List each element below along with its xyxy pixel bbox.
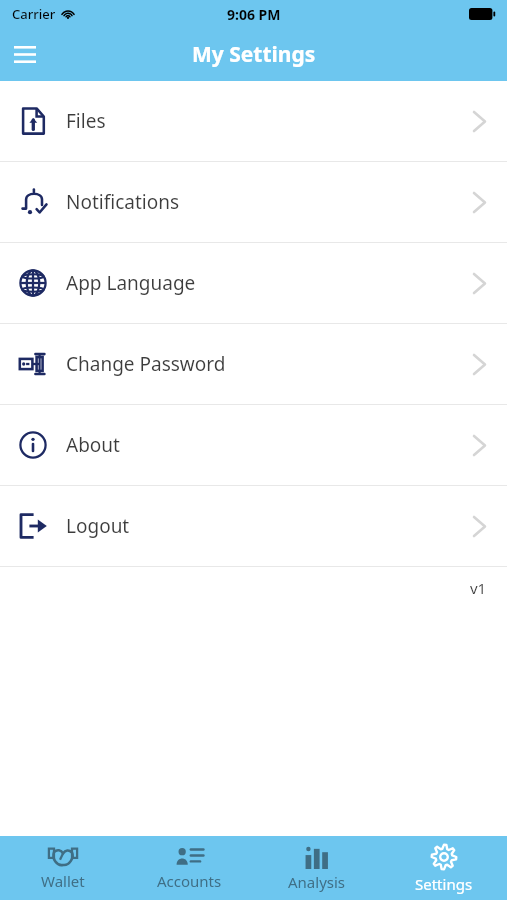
staticText: Files: [66, 108, 106, 134]
staticText: App Language: [66, 270, 196, 296]
staticText: Analysis: [288, 872, 346, 892]
staticText: 9:06 PM: [227, 5, 281, 24]
staticText: My Settings: [192, 40, 316, 69]
staticText: Accounts: [157, 871, 222, 891]
staticText: Wallet: [41, 871, 85, 891]
button[interactable]: About: [0, 405, 507, 485]
button[interactable]: App Language: [0, 243, 507, 323]
button[interactable]: Change Password: [0, 324, 507, 404]
staticText: Settings: [415, 874, 473, 894]
button[interactable]: Wallet: [0, 836, 126, 900]
staticText: v1: [470, 578, 487, 598]
button[interactable]: Notifications: [0, 162, 507, 242]
staticText: Notifications: [66, 189, 180, 215]
staticText: Logout: [66, 513, 130, 539]
button[interactable]: Analysis: [253, 836, 380, 900]
staticText: Change Password: [66, 351, 226, 377]
button[interactable]: Settings: [380, 836, 507, 900]
button[interactable]: Files: [0, 81, 507, 161]
button[interactable]: Menu: [0, 32, 50, 77]
button[interactable]: Accounts: [126, 836, 253, 900]
staticText: About: [66, 432, 120, 458]
staticText: Carrier: [12, 5, 56, 23]
button[interactable]: Logout: [0, 486, 507, 566]
